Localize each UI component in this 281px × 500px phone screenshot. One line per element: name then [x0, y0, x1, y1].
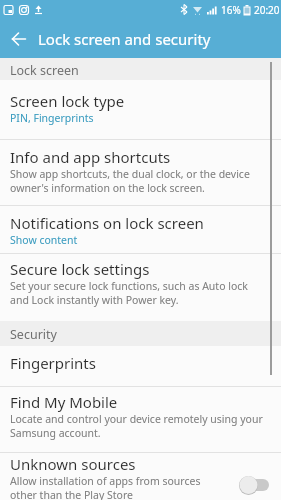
button[interactable]: Find My Mobile [0, 387, 281, 452]
staticText: Locate and control your device remotely … [10, 412, 263, 440]
staticText: Set your secure lock functions, such as … [10, 279, 248, 307]
staticText: Lock screen and security [38, 29, 211, 49]
staticText: Info and app shortcuts [10, 147, 171, 167]
button[interactable]: Fingerprints [0, 346, 281, 386]
button[interactable]: Info and app shortcuts [0, 140, 281, 205]
staticText: Find My Mobile [10, 392, 118, 412]
button[interactable]: Screen lock type [0, 80, 281, 139]
button[interactable] [239, 475, 269, 494]
staticText: Screen lock type [10, 91, 125, 111]
button[interactable] [0, 19, 38, 58]
staticText: 16% [221, 3, 241, 17]
staticText: PIN, Fingerprints [10, 111, 94, 125]
staticText: Notifications on lock screen [10, 213, 204, 233]
staticText: Unknown sources [10, 454, 136, 474]
staticText: Security [10, 326, 57, 343]
staticText: Show content [10, 233, 78, 247]
button[interactable]: Notifications on lock screen [0, 206, 281, 253]
button[interactable]: Unknown sources [0, 453, 281, 500]
staticText: Lock screen [10, 62, 79, 79]
staticText: Show app shortcuts, the dual clock, or t… [10, 167, 250, 195]
staticText: Allow installation of apps from sources … [10, 474, 201, 500]
staticText: Fingerprints [10, 353, 96, 373]
button[interactable]: Secure lock settings [0, 254, 281, 321]
staticText: 20:20 [254, 3, 280, 17]
staticText: Secure lock settings [10, 259, 150, 279]
